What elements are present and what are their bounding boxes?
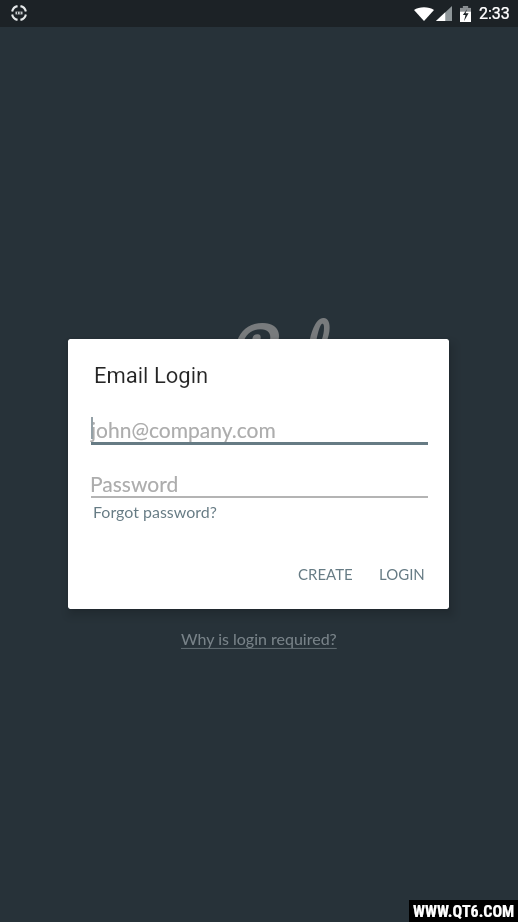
button[interactable]: LOGIN bbox=[366, 557, 438, 591]
staticText: WWW.QT6.COM bbox=[413, 902, 515, 921]
staticText: Email Login bbox=[94, 363, 209, 389]
button[interactable]: Forgot password? bbox=[91, 499, 219, 524]
staticText: CREATE bbox=[298, 565, 353, 583]
staticText: Forgot password? bbox=[93, 502, 217, 521]
staticText: LOGIN bbox=[379, 565, 425, 583]
button[interactable]: Why is login required? bbox=[175, 625, 343, 652]
staticText: john@company.com bbox=[91, 417, 276, 442]
other: App logo bbox=[10, 4, 28, 22]
button[interactable]: CREATE bbox=[285, 557, 366, 591]
staticText: 2:33 bbox=[479, 4, 510, 23]
staticText: Password bbox=[90, 471, 179, 496]
staticText: Relax bbox=[232, 296, 384, 398]
staticText: Why is login required? bbox=[181, 629, 337, 648]
